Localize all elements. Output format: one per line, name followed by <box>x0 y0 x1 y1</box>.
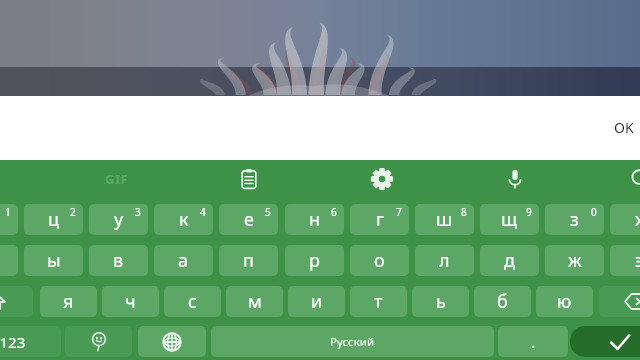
button[interactable]: з <box>545 204 604 235</box>
staticText: у <box>114 207 124 232</box>
button[interactable]: Shift <box>0 286 33 317</box>
staticText: 4 <box>200 205 206 219</box>
staticText: в <box>113 248 124 273</box>
button[interactable]: у <box>89 204 148 235</box>
staticText: л <box>439 248 450 273</box>
button[interactable]: ь <box>412 286 469 317</box>
staticText: н <box>309 207 321 232</box>
button[interactable]: Search <box>623 161 640 197</box>
button[interactable]: Русский <box>211 326 494 357</box>
staticText: ш <box>436 207 453 232</box>
button[interactable]: б <box>474 286 531 317</box>
button[interactable]: н <box>285 204 344 235</box>
button[interactable]: Settings <box>364 161 400 197</box>
staticText: п <box>243 248 254 273</box>
button[interactable]: к <box>154 204 213 235</box>
staticText: GIF <box>105 170 129 188</box>
button[interactable]: г <box>350 204 409 235</box>
staticText: 0 <box>591 205 597 219</box>
staticText: г <box>376 207 384 232</box>
button[interactable]: д <box>480 245 539 276</box>
button[interactable]: с <box>164 286 221 317</box>
staticText: Русский <box>330 334 375 350</box>
button[interactable]: ц <box>24 204 83 235</box>
button[interactable]: Backspace <box>599 286 640 317</box>
button[interactable]: ю <box>536 286 593 317</box>
button[interactable]: в <box>89 245 148 276</box>
staticText: я <box>63 289 74 314</box>
staticText: 2 <box>70 205 76 219</box>
staticText: т <box>374 289 383 314</box>
staticText: б <box>497 289 508 314</box>
staticText: а <box>178 248 189 273</box>
button[interactable]: OK <box>606 110 640 145</box>
staticText: э <box>635 248 640 273</box>
staticText: е <box>244 207 254 232</box>
button[interactable]: GIF <box>97 163 137 195</box>
staticText: 8 <box>461 205 467 219</box>
staticText: х <box>635 207 640 232</box>
button[interactable]: ф <box>0 245 18 276</box>
staticText: ы <box>47 248 61 273</box>
button[interactable]: т <box>350 286 407 317</box>
button[interactable]: Change language <box>138 326 206 357</box>
staticText: 3 <box>135 205 141 219</box>
staticText: д <box>504 248 515 273</box>
staticText: з <box>570 207 579 232</box>
button[interactable]: х <box>610 204 640 235</box>
button[interactable]: ж <box>545 245 604 276</box>
staticText: 5 <box>265 205 271 219</box>
staticText: ь <box>436 289 446 314</box>
staticText: ч <box>125 289 136 314</box>
staticText: 6 <box>331 205 337 219</box>
staticText: ц <box>48 207 60 232</box>
button[interactable]: л <box>415 245 474 276</box>
staticText: р <box>309 248 320 273</box>
staticText: о <box>374 248 385 273</box>
staticText: с <box>188 289 197 314</box>
button[interactable]: а <box>154 245 213 276</box>
button[interactable]: о <box>350 245 409 276</box>
button[interactable]: Enter <box>570 326 640 357</box>
button[interactable]: Voice input <box>497 161 533 197</box>
button[interactable]: . <box>498 326 568 357</box>
button[interactable]: и <box>288 286 345 317</box>
button[interactable]: ш <box>415 204 474 235</box>
staticText: ?123 <box>0 332 26 352</box>
staticText: щ <box>501 207 518 232</box>
staticText: 9 <box>526 205 532 219</box>
staticText: ж <box>568 248 582 273</box>
button[interactable]: м <box>226 286 283 317</box>
staticText: 1 <box>5 205 11 219</box>
button[interactable]: я <box>40 286 97 317</box>
staticText: ю <box>557 289 572 314</box>
button[interactable]: п <box>219 245 278 276</box>
staticText: м <box>248 289 262 314</box>
button[interactable]: ?123 <box>0 326 61 357</box>
button[interactable]: щ <box>480 204 539 235</box>
staticText: OK <box>614 118 634 137</box>
button[interactable]: р <box>285 245 344 276</box>
button[interactable]: ы <box>24 245 83 276</box>
button[interactable]: е <box>219 204 278 235</box>
staticText: . <box>531 331 536 353</box>
button[interactable]: э <box>610 245 640 276</box>
staticText: 7 <box>396 205 402 219</box>
button[interactable]: й <box>0 204 18 235</box>
staticText: к <box>179 207 189 232</box>
button[interactable]: Emoji <box>65 326 132 357</box>
staticText: и <box>311 289 323 314</box>
button[interactable]: Clipboard <box>231 161 267 197</box>
button[interactable]: ч <box>102 286 159 317</box>
